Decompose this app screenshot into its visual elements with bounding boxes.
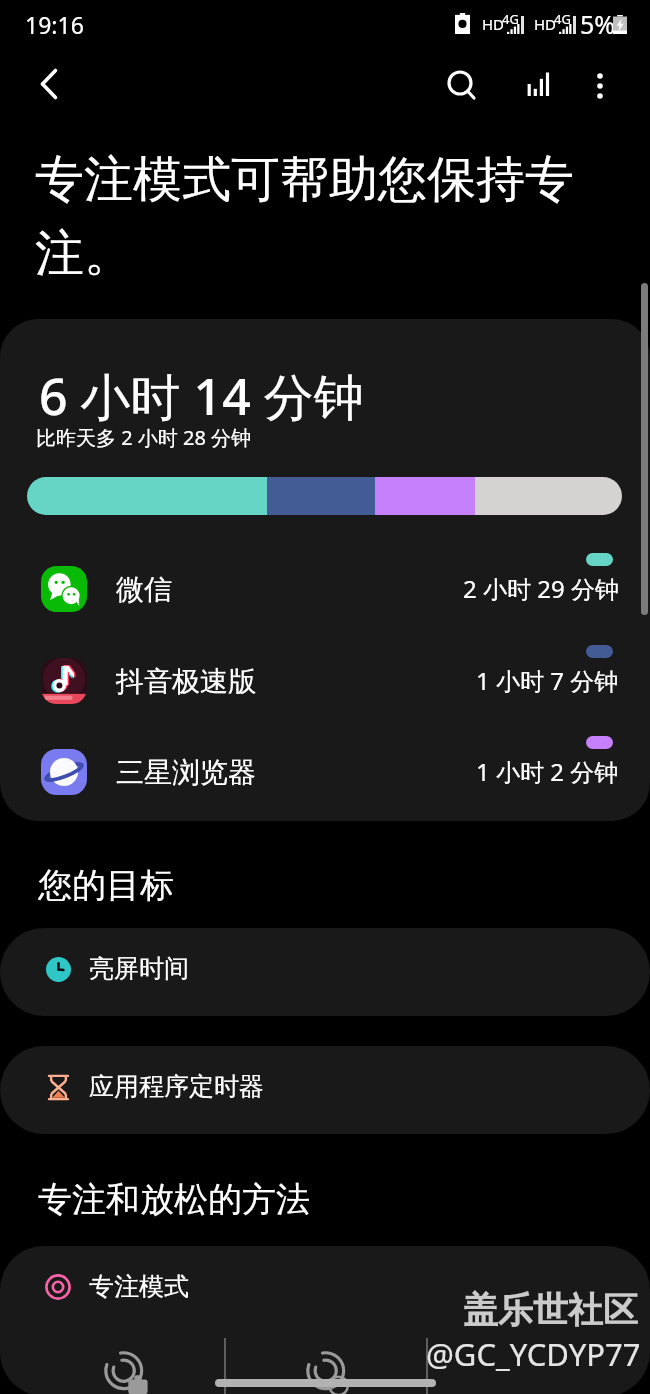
- button[interactable]: Search: [434, 58, 490, 114]
- staticText: @GC_YCDYP77: [426, 1333, 641, 1375]
- staticText: 2 小时 29 分钟: [463, 572, 619, 605]
- button[interactable]: 6 小时 14 分钟: [0, 319, 650, 821]
- staticText: 专注模式: [89, 1271, 189, 1302]
- staticText: 应用程序定时器: [89, 1071, 264, 1102]
- staticText: 1 小时 2 分钟: [476, 755, 619, 788]
- staticText: 5%: [580, 7, 616, 41]
- staticText: 19:16: [25, 9, 84, 40]
- staticText: 三星浏览器: [116, 755, 256, 790]
- staticText: 亮屏时间: [89, 953, 189, 984]
- staticText: 抖音极速版: [116, 664, 256, 699]
- staticText: 专注模式可帮助您保持专 注。: [35, 149, 574, 285]
- staticText: 4G: [554, 10, 571, 28]
- staticText: 4G: [502, 10, 519, 28]
- staticText: 您的目标: [38, 864, 174, 907]
- staticText: HD: [482, 14, 505, 34]
- staticText: 6 小时 14 分钟: [39, 362, 364, 430]
- staticText: HD: [534, 14, 557, 34]
- staticText: 1 小时 7 分钟: [476, 664, 619, 697]
- button[interactable]: 抖音极速版: [0, 658, 650, 736]
- button[interactable]: Usage statistics: [519, 58, 575, 114]
- button[interactable]: Back: [21, 56, 77, 112]
- button[interactable]: 亮屏时间: [0, 928, 650, 1016]
- button[interactable]: 三星浏览器: [0, 749, 650, 821]
- staticText: 微信: [116, 572, 172, 607]
- staticText: 盖乐世社区: [463, 1288, 638, 1332]
- staticText: 专注和放松的方法: [38, 1178, 310, 1221]
- staticText: 比昨天多 2 小时 28 分钟: [36, 424, 252, 451]
- button[interactable]: 微信: [0, 566, 650, 644]
- button[interactable]: 应用程序定时器: [0, 1046, 650, 1134]
- button[interactable]: 专注模式: [0, 1246, 650, 1394]
- button[interactable]: More options: [572, 58, 628, 114]
